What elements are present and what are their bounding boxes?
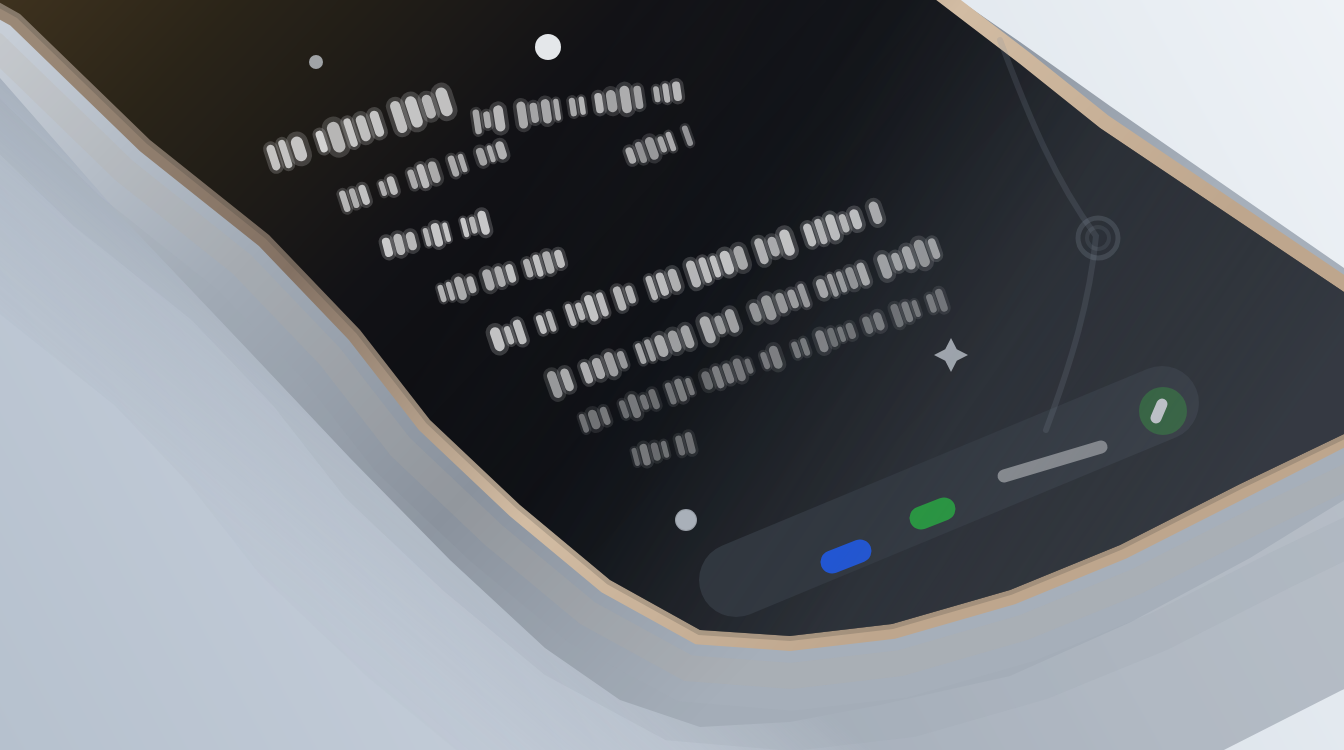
button[interactable]: Home (736, 520, 856, 604)
button[interactable]: Messages (976, 440, 1096, 524)
button[interactable]: Open article (250, 80, 960, 460)
button[interactable]: Explore (856, 480, 976, 564)
button[interactable]: Profile (1096, 372, 1216, 456)
button[interactable]: Open related story (470, 180, 970, 480)
